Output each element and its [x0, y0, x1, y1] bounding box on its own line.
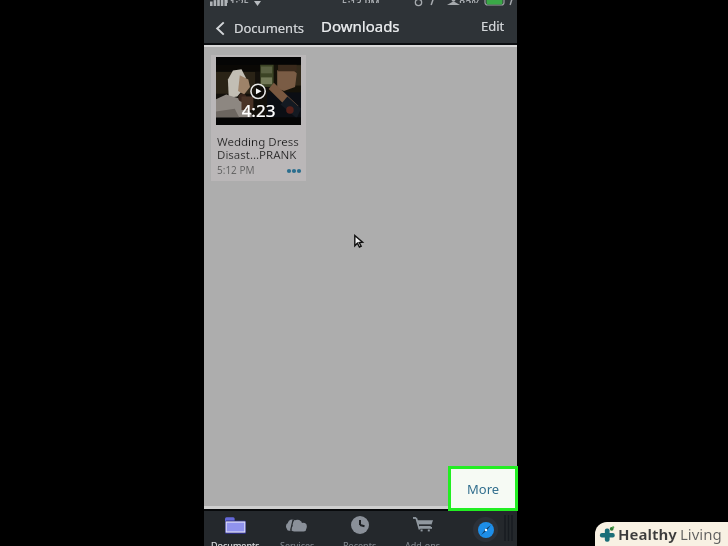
- staticText: Services: [280, 539, 315, 546]
- staticText: 11:25: [224, 0, 250, 3]
- staticText: 5:13 PM: [342, 0, 380, 3]
- button[interactable]: More: [451, 469, 515, 508]
- staticText: 5:12 PM: [217, 163, 255, 177]
- staticText: Healthy: [618, 524, 677, 544]
- staticText: More: [467, 480, 500, 498]
- button[interactable]: Edit: [481, 17, 505, 35]
- staticText: Disast…PRANK: [217, 147, 297, 163]
- staticText: Documents: [211, 539, 260, 546]
- staticText: Documents: [234, 19, 305, 37]
- staticText: Recents: [343, 539, 377, 546]
- button[interactable]: More options: [286, 165, 302, 177]
- button[interactable]: Documents: [204, 511, 266, 546]
- button[interactable]: Documents: [214, 19, 305, 37]
- staticText: Add-ons: [405, 539, 441, 546]
- staticText: Living: [680, 524, 722, 544]
- button[interactable]: Services: [266, 511, 328, 546]
- button[interactable]: Add-ons: [391, 511, 454, 546]
- button[interactable]: Recents: [328, 511, 391, 546]
- staticText: Downloads: [321, 16, 400, 36]
- staticText: Wedding Dress: [217, 134, 299, 150]
- button[interactable]: 4:23: [211, 55, 306, 181]
- button[interactable]: Browse: [478, 522, 494, 538]
- staticText: 4:23: [216, 99, 301, 122]
- staticText: 82%: [459, 0, 481, 3]
